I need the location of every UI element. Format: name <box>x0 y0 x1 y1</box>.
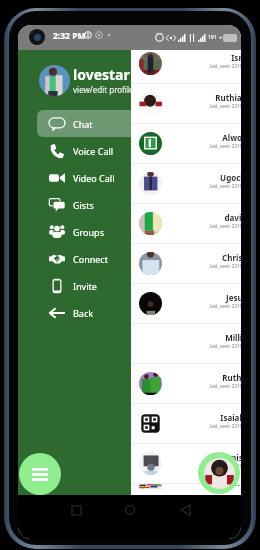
staticText: Ruthianimma <box>215 92 241 103</box>
staticText: Connect <box>73 253 108 265</box>
button[interactable]: Chat <box>37 110 131 137</box>
staticText: last_seen: 2019-10-12 21:45:03 <box>210 103 241 109</box>
button[interactable]: Connect <box>37 245 131 272</box>
staticText: Jesuloba <box>226 292 241 303</box>
staticText: last_seen: 2019-10-12 21:45:03 <box>210 143 241 149</box>
staticText: Groups <box>73 226 104 238</box>
staticText: Invite <box>73 280 97 292</box>
staticText: last_seen: 2019-10-12 21:45:03 <box>210 383 241 389</box>
staticText: view/edit profile <box>73 84 131 95</box>
staticText: last_seen: 2019-10-12 21:45:03 <box>210 463 241 469</box>
staticText: 191 <box>208 34 217 41</box>
button[interactable]: davidson <box>18 204 241 243</box>
button[interactable]: Voice Call <box>37 137 131 164</box>
staticText: Mrjudeson <box>221 481 241 486</box>
staticText: last_seen: 2019-10-12 21:45:03 <box>210 303 241 309</box>
staticText: + <box>219 34 223 42</box>
button[interactable]: Contact <box>198 452 240 494</box>
button[interactable]: Back <box>37 299 131 326</box>
staticText: last_seen: 2019-10-12 21:45:03 <box>210 183 241 189</box>
button[interactable]: Christabel <box>18 244 241 283</box>
staticText: Christabel <box>222 252 241 263</box>
button[interactable]: Video Call <box>37 164 131 191</box>
button[interactable]: Ugochikwu <box>18 164 241 203</box>
button[interactable]: Jesuloba <box>18 284 241 323</box>
staticText: lovestar <box>73 65 130 84</box>
button[interactable]: Gists <box>37 191 131 218</box>
button[interactable]: Promisedland <box>18 444 241 483</box>
staticText: Ugochikwu <box>220 172 241 183</box>
staticText: last_seen: 2019-10-12 21:45:03 <box>210 423 241 429</box>
button[interactable]: Israel <box>18 44 241 83</box>
staticText: Alwornum <box>222 132 241 143</box>
button[interactable]: Alwornum <box>18 124 241 163</box>
staticText: Back <box>73 307 94 319</box>
staticText: 2:32 PM <box>53 30 86 42</box>
staticText: last_seen: 2019-10-12 21:45:03 <box>210 223 241 229</box>
staticText: Millicent <box>225 332 241 343</box>
button[interactable]: Back <box>174 499 196 521</box>
staticText: Isaiahmark <box>220 412 241 423</box>
button[interactable]: Isaiahmark <box>18 404 241 443</box>
staticText: Ruthianna <box>222 372 241 383</box>
staticText: Voice Call <box>73 145 114 157</box>
button[interactable]: Mrjudeson <box>18 484 241 489</box>
button[interactable]: Groups <box>37 218 131 245</box>
staticText: last_seen: 2019-10-12 21:45:03 <box>210 263 241 269</box>
staticText: Video Call <box>73 172 115 184</box>
button[interactable]: Ruthianna <box>18 364 241 403</box>
button[interactable]: Invite <box>37 272 131 299</box>
staticText: davidson <box>224 212 241 223</box>
button[interactable]: Ruthianimma <box>18 84 241 123</box>
staticText: last_seen: 2019-10-12 21:45:03 <box>210 63 241 69</box>
button[interactable]: Home <box>119 499 141 521</box>
button[interactable]: Recents <box>65 499 87 521</box>
staticText: Promisedland <box>215 452 241 463</box>
staticText: Gists <box>73 199 94 211</box>
button[interactable]: Menu <box>19 453 61 495</box>
staticText: Israel <box>231 52 241 63</box>
staticText: last_seen: 2019-10-12 21:45:03 <box>210 343 241 349</box>
button[interactable]: lovestar <box>18 50 131 110</box>
staticText: Chat <box>73 118 93 130</box>
button[interactable]: Millicent <box>18 324 241 363</box>
